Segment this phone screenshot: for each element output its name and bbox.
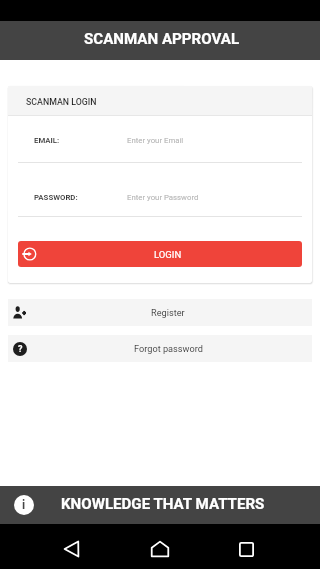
staticText: LOGIN [154, 249, 182, 260]
button[interactable]: Recent apps [224, 527, 268, 569]
button[interactable]: ? [8, 335, 312, 362]
staticText: Enter your Password [127, 193, 199, 202]
staticText: SCANMAN LOGIN [26, 97, 97, 107]
staticText: i [22, 498, 26, 512]
staticText: KNOWLEDGE THAT MATTERS [61, 495, 265, 513]
button[interactable]: Back [49, 527, 93, 569]
button[interactable]: Register [8, 299, 312, 326]
staticText: SCANMAN APPROVAL [84, 30, 240, 48]
button[interactable]: LOGIN [18, 241, 302, 267]
staticText: Forgot password [134, 343, 203, 354]
staticText: ? [18, 344, 23, 355]
button[interactable]: Info [14, 495, 34, 515]
staticText: EMAIL: [34, 136, 127, 145]
staticText: PASSWORD: [34, 193, 127, 202]
staticText: Register [151, 307, 185, 318]
staticText: Enter your Email [127, 136, 184, 145]
button[interactable]: Home [138, 527, 182, 569]
